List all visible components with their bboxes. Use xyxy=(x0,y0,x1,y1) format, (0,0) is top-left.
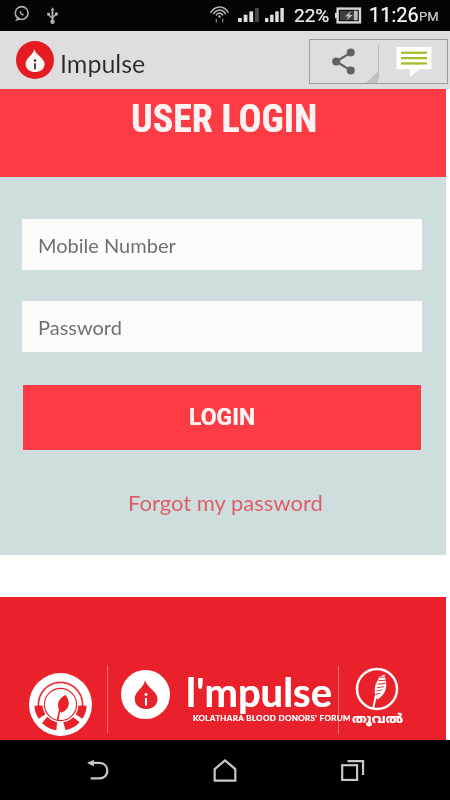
button[interactable]: Home xyxy=(195,740,255,800)
staticText: l'mpulse xyxy=(186,668,333,716)
staticText: USER LOGIN xyxy=(131,97,318,142)
button[interactable]: Password xyxy=(22,301,422,352)
staticText: 22% xyxy=(294,4,330,26)
staticText: Impulse xyxy=(60,48,146,78)
button[interactable]: Messages xyxy=(379,39,448,84)
staticText: Mobile Number xyxy=(38,233,176,257)
staticText: 11:26 xyxy=(369,3,419,26)
button[interactable]: Mobile Number xyxy=(22,219,422,270)
staticText: LOGIN xyxy=(189,404,256,431)
button[interactable]: Recent apps xyxy=(323,740,383,800)
staticText: KOLATHARA BLOOD DONORS' FORUM xyxy=(193,713,351,723)
button[interactable]: Forgot my password xyxy=(118,486,333,518)
staticText: Password xyxy=(38,315,122,339)
button[interactable]: Share xyxy=(309,39,378,84)
staticText: PM xyxy=(419,9,439,24)
button[interactable]: LOGIN xyxy=(23,385,421,450)
staticText: തൂവൽ xyxy=(352,712,403,728)
button[interactable]: Back xyxy=(68,740,128,800)
